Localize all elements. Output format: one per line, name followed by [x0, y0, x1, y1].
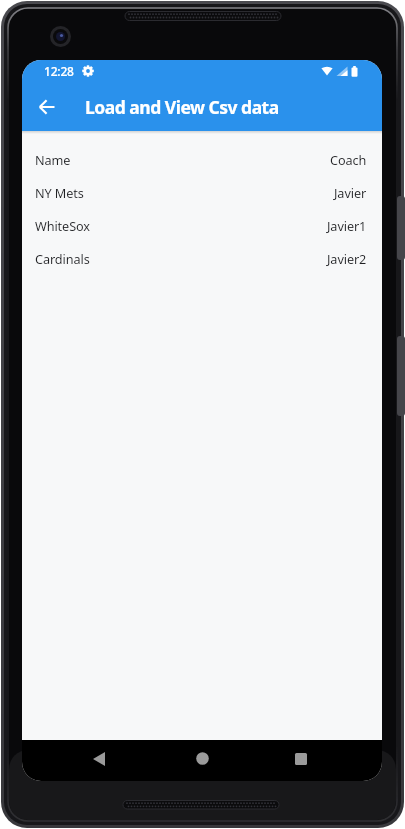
staticText: 12:28: [44, 63, 74, 79]
button[interactable]: Cardinals: [22, 242, 382, 275]
button[interactable]: NY Mets: [22, 176, 382, 209]
button[interactable]: [178, 740, 226, 781]
staticText: Cardinals: [35, 250, 90, 267]
button[interactable]: [277, 740, 325, 781]
staticText: Javier1: [327, 217, 367, 234]
staticText: Coach: [330, 151, 367, 168]
staticText: Javier2: [327, 250, 367, 267]
staticText: Name: [35, 151, 71, 168]
button[interactable]: [22, 82, 71, 131]
staticText: WhiteSox: [35, 217, 90, 234]
button[interactable]: [75, 740, 123, 781]
staticText: Javier: [334, 184, 367, 201]
button[interactable]: WhiteSox: [22, 209, 382, 242]
staticText: Load and View Csv data: [85, 95, 279, 119]
button[interactable]: Name: [22, 143, 382, 176]
staticText: NY Mets: [35, 184, 84, 201]
